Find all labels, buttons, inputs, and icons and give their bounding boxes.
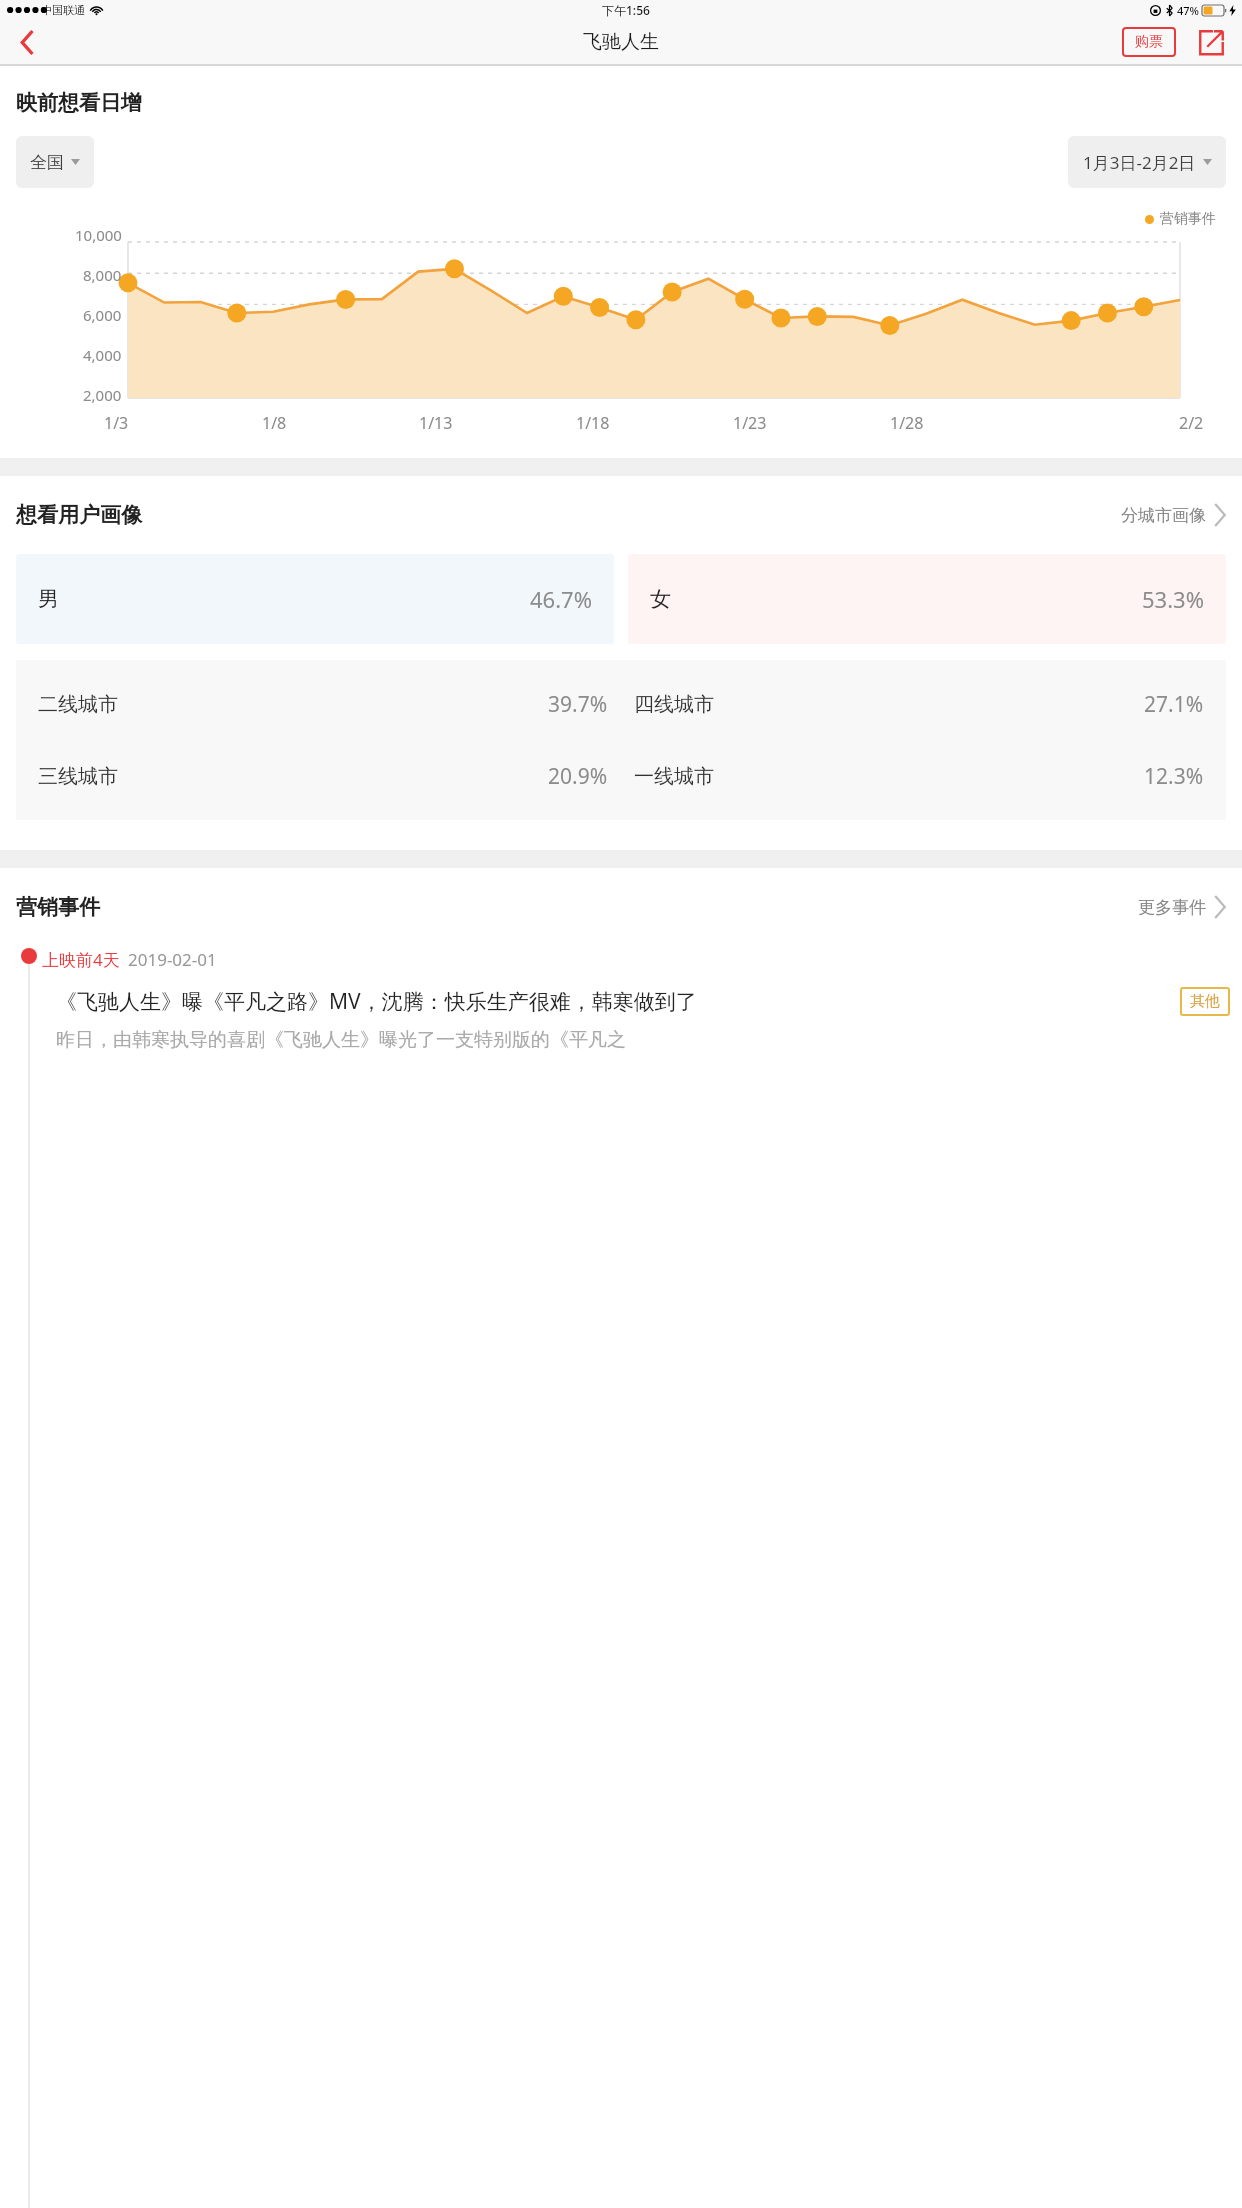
- staticText: 1/28: [890, 412, 924, 434]
- staticText: 上映前4天: [42, 948, 120, 971]
- staticText: 1/8: [262, 412, 287, 434]
- button[interactable]: 二线城市: [16, 668, 1226, 740]
- button[interactable]: 全国: [16, 136, 94, 188]
- staticText: 53.3%: [1142, 584, 1204, 614]
- staticText: 映前想看日增: [16, 90, 142, 116]
- button[interactable]: Back: [4, 20, 50, 64]
- button[interactable]: Share: [1194, 25, 1228, 59]
- staticText: 46.7%: [530, 584, 592, 614]
- staticText: 1/13: [419, 412, 453, 434]
- staticText: 1/23: [733, 412, 767, 434]
- staticText: 昨日，由韩寒执导的喜剧《飞驰人生》曝光了一支特别版的《平凡之: [56, 1028, 626, 1052]
- staticText: 分城市画像: [1121, 505, 1206, 526]
- staticText: 女: [650, 586, 671, 612]
- staticText: 47%: [1177, 3, 1199, 18]
- staticText: 下午1:56: [602, 2, 650, 18]
- staticText: 购票: [1135, 33, 1163, 51]
- staticText: 2/2: [1179, 412, 1204, 434]
- button[interactable]: 女: [628, 554, 1226, 644]
- staticText: 四线城市: [634, 692, 714, 717]
- staticText: 27.1%: [1144, 690, 1204, 719]
- staticText: 2,000: [83, 385, 122, 405]
- staticText: 三线城市: [38, 764, 118, 789]
- staticText: 想看用户画像: [16, 502, 142, 528]
- staticText: 营销事件: [1160, 210, 1216, 228]
- staticText: 1/18: [576, 412, 610, 434]
- staticText: 《飞驰人生》曝《平凡之路》MV，沈腾：快乐生产很难，韩寒做到了: [56, 987, 1168, 1016]
- staticText: 飞驰人生: [583, 30, 659, 54]
- button[interactable]: 购票: [1122, 27, 1176, 57]
- staticText: 8,000: [83, 265, 122, 285]
- staticText: 更多事件: [1138, 897, 1206, 918]
- staticText: 12.3%: [1144, 762, 1204, 791]
- staticText: 1/3: [104, 412, 129, 434]
- staticText: 其他: [1190, 992, 1220, 1011]
- staticText: 20.9%: [548, 762, 608, 791]
- staticText: 10,000: [75, 225, 122, 245]
- staticText: 2019-02-01: [128, 948, 217, 971]
- staticText: 一线城市: [634, 764, 714, 789]
- staticText: 全国: [30, 152, 64, 173]
- staticText: 营销事件: [16, 894, 100, 920]
- staticText: 中国联通: [41, 3, 85, 17]
- button[interactable]: 三线城市: [16, 740, 1226, 812]
- staticText: 6,000: [83, 305, 122, 325]
- button[interactable]: 男: [16, 554, 614, 644]
- staticText: 1月3日-2月2日: [1083, 151, 1196, 174]
- staticText: 4,000: [83, 345, 122, 365]
- button[interactable]: 更多事件: [1138, 896, 1226, 918]
- button[interactable]: 1月3日-2月2日: [1068, 136, 1226, 188]
- button[interactable]: 分城市画像: [1121, 504, 1226, 526]
- staticText: 男: [38, 586, 59, 612]
- staticText: 二线城市: [38, 692, 118, 717]
- staticText: 39.7%: [548, 690, 608, 719]
